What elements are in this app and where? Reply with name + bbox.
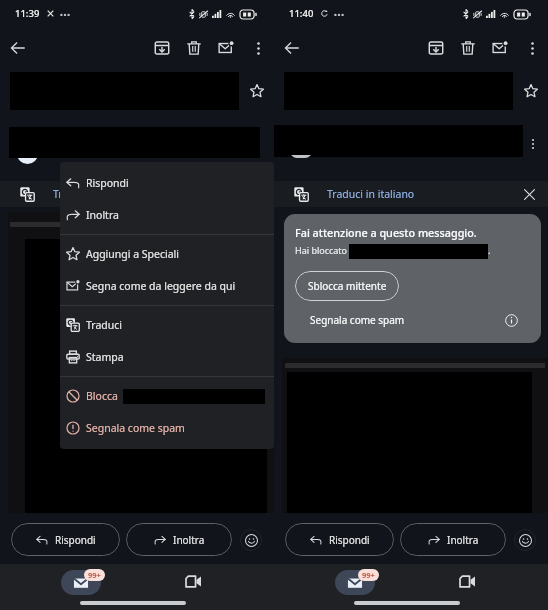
button[interactable]: Traduci in italiano bbox=[0, 181, 274, 207]
button[interactable]: More options bbox=[242, 32, 274, 64]
staticText: Sblocca mittente bbox=[308, 279, 387, 293]
staticText: Traduci in italiano bbox=[53, 187, 141, 201]
button[interactable]: Mail bbox=[5, 564, 137, 610]
button[interactable]: Meet bbox=[411, 564, 543, 610]
button[interactable]: Back bbox=[2, 32, 34, 64]
button[interactable]: Inoltra bbox=[400, 523, 506, 556]
staticText: Blocca bbox=[86, 389, 118, 403]
button[interactable]: Inoltra bbox=[126, 523, 232, 556]
button[interactable]: Blocca bbox=[60, 380, 274, 412]
staticText: . bbox=[488, 244, 491, 257]
staticText: Aggiungi a Speciali bbox=[86, 247, 180, 261]
button[interactable]: Sblocca mittente bbox=[295, 271, 399, 301]
staticText: Rispondi bbox=[55, 533, 96, 547]
button[interactable]: Meet bbox=[137, 564, 269, 610]
button[interactable]: Close bbox=[516, 181, 542, 207]
button[interactable]: Star bbox=[517, 77, 545, 105]
button[interactable]: Archive bbox=[146, 32, 178, 64]
button[interactable]: More options bbox=[516, 32, 548, 64]
staticText: Hai bloccato bbox=[295, 244, 348, 256]
button[interactable]: Traduci in italiano bbox=[274, 181, 548, 207]
button[interactable]: Segnala come spam bbox=[310, 310, 405, 330]
button[interactable]: Emoji bbox=[240, 529, 262, 551]
button[interactable]: Emoji bbox=[514, 529, 536, 551]
staticText: Fai attenzione a questo messaggio. bbox=[295, 225, 477, 240]
staticText: Segnala come spam bbox=[86, 421, 185, 435]
button[interactable]: Traduci bbox=[60, 309, 274, 341]
staticText: Inoltra bbox=[86, 208, 119, 222]
button[interactable]: Rispondi bbox=[11, 523, 120, 556]
staticText: Rispondi bbox=[329, 533, 370, 547]
button[interactable]: Rispondi bbox=[60, 167, 274, 199]
staticText: Segna come da leggere da qui bbox=[86, 279, 236, 293]
button[interactable]: Back bbox=[276, 32, 308, 64]
button[interactable]: Delete bbox=[178, 32, 210, 64]
button[interactable]: Info bbox=[500, 309, 522, 331]
button[interactable]: Star bbox=[243, 77, 271, 105]
button[interactable]: Segnala come spam bbox=[60, 412, 274, 444]
staticText: 11:40 bbox=[289, 7, 314, 20]
staticText: Segnala come spam bbox=[310, 313, 405, 327]
button[interactable]: Mail bbox=[279, 564, 411, 610]
staticText: Traduci in italiano bbox=[327, 187, 415, 201]
button[interactable]: Mark unread bbox=[210, 32, 242, 64]
staticText: Inoltra bbox=[447, 533, 479, 547]
button[interactable]: More options bbox=[520, 131, 546, 157]
button[interactable]: Rispondi bbox=[285, 523, 394, 556]
staticText: Traduci bbox=[86, 318, 123, 332]
button[interactable]: Delete bbox=[452, 32, 484, 64]
staticText: 99+ bbox=[88, 570, 101, 580]
staticText: Inoltra bbox=[173, 533, 205, 547]
button[interactable]: Aggiungi a Speciali bbox=[60, 238, 274, 270]
button[interactable]: Segna come da leggere da qui bbox=[60, 270, 274, 302]
staticText: Stampa bbox=[86, 350, 124, 364]
staticText: Rispondi bbox=[86, 176, 129, 190]
button[interactable]: Stampa bbox=[60, 341, 274, 373]
staticText: 11:39 bbox=[15, 7, 40, 20]
button[interactable]: Archive bbox=[420, 32, 452, 64]
button[interactable]: Inoltra bbox=[60, 199, 274, 231]
staticText: 99+ bbox=[362, 570, 375, 580]
button[interactable]: Mark unread bbox=[484, 32, 516, 64]
